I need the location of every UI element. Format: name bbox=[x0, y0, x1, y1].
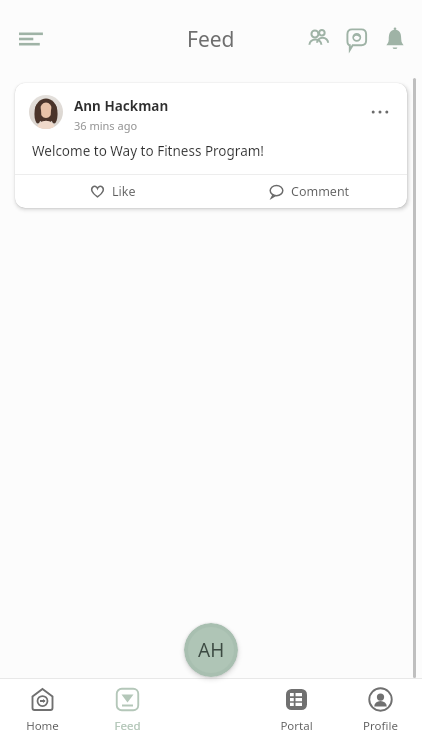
staticText: Feed bbox=[114, 718, 141, 734]
staticText: Like bbox=[112, 183, 136, 200]
button[interactable]: Notifications bbox=[376, 20, 414, 58]
staticText: AH bbox=[198, 637, 225, 663]
button[interactable]: Like bbox=[15, 175, 211, 208]
button[interactable]: Comment bbox=[211, 175, 407, 208]
staticText: 36 mins ago bbox=[74, 118, 138, 133]
button[interactable]: Profile menu AH bbox=[184, 623, 238, 677]
button[interactable]: Profile bbox=[338, 684, 422, 750]
button[interactable]: Feed bbox=[85, 684, 170, 750]
button[interactable]: More options bbox=[363, 95, 397, 129]
staticText: Feed bbox=[187, 25, 235, 54]
button[interactable]: People bbox=[300, 20, 338, 58]
button[interactable]: Portal bbox=[254, 684, 338, 750]
staticText: Portal bbox=[280, 718, 313, 734]
staticText: Ann Hackman bbox=[74, 97, 169, 115]
button[interactable]: Messages bbox=[338, 20, 376, 58]
staticText: Comment bbox=[291, 183, 350, 200]
staticText: Profile bbox=[363, 718, 398, 734]
staticText: Home bbox=[26, 718, 59, 734]
button[interactable]: Home bbox=[0, 684, 85, 750]
staticText: Welcome to Way to Fitness Program! bbox=[32, 142, 264, 160]
button[interactable]: Ann Hackman bbox=[15, 83, 407, 208]
button[interactable]: Menu bbox=[8, 15, 56, 63]
